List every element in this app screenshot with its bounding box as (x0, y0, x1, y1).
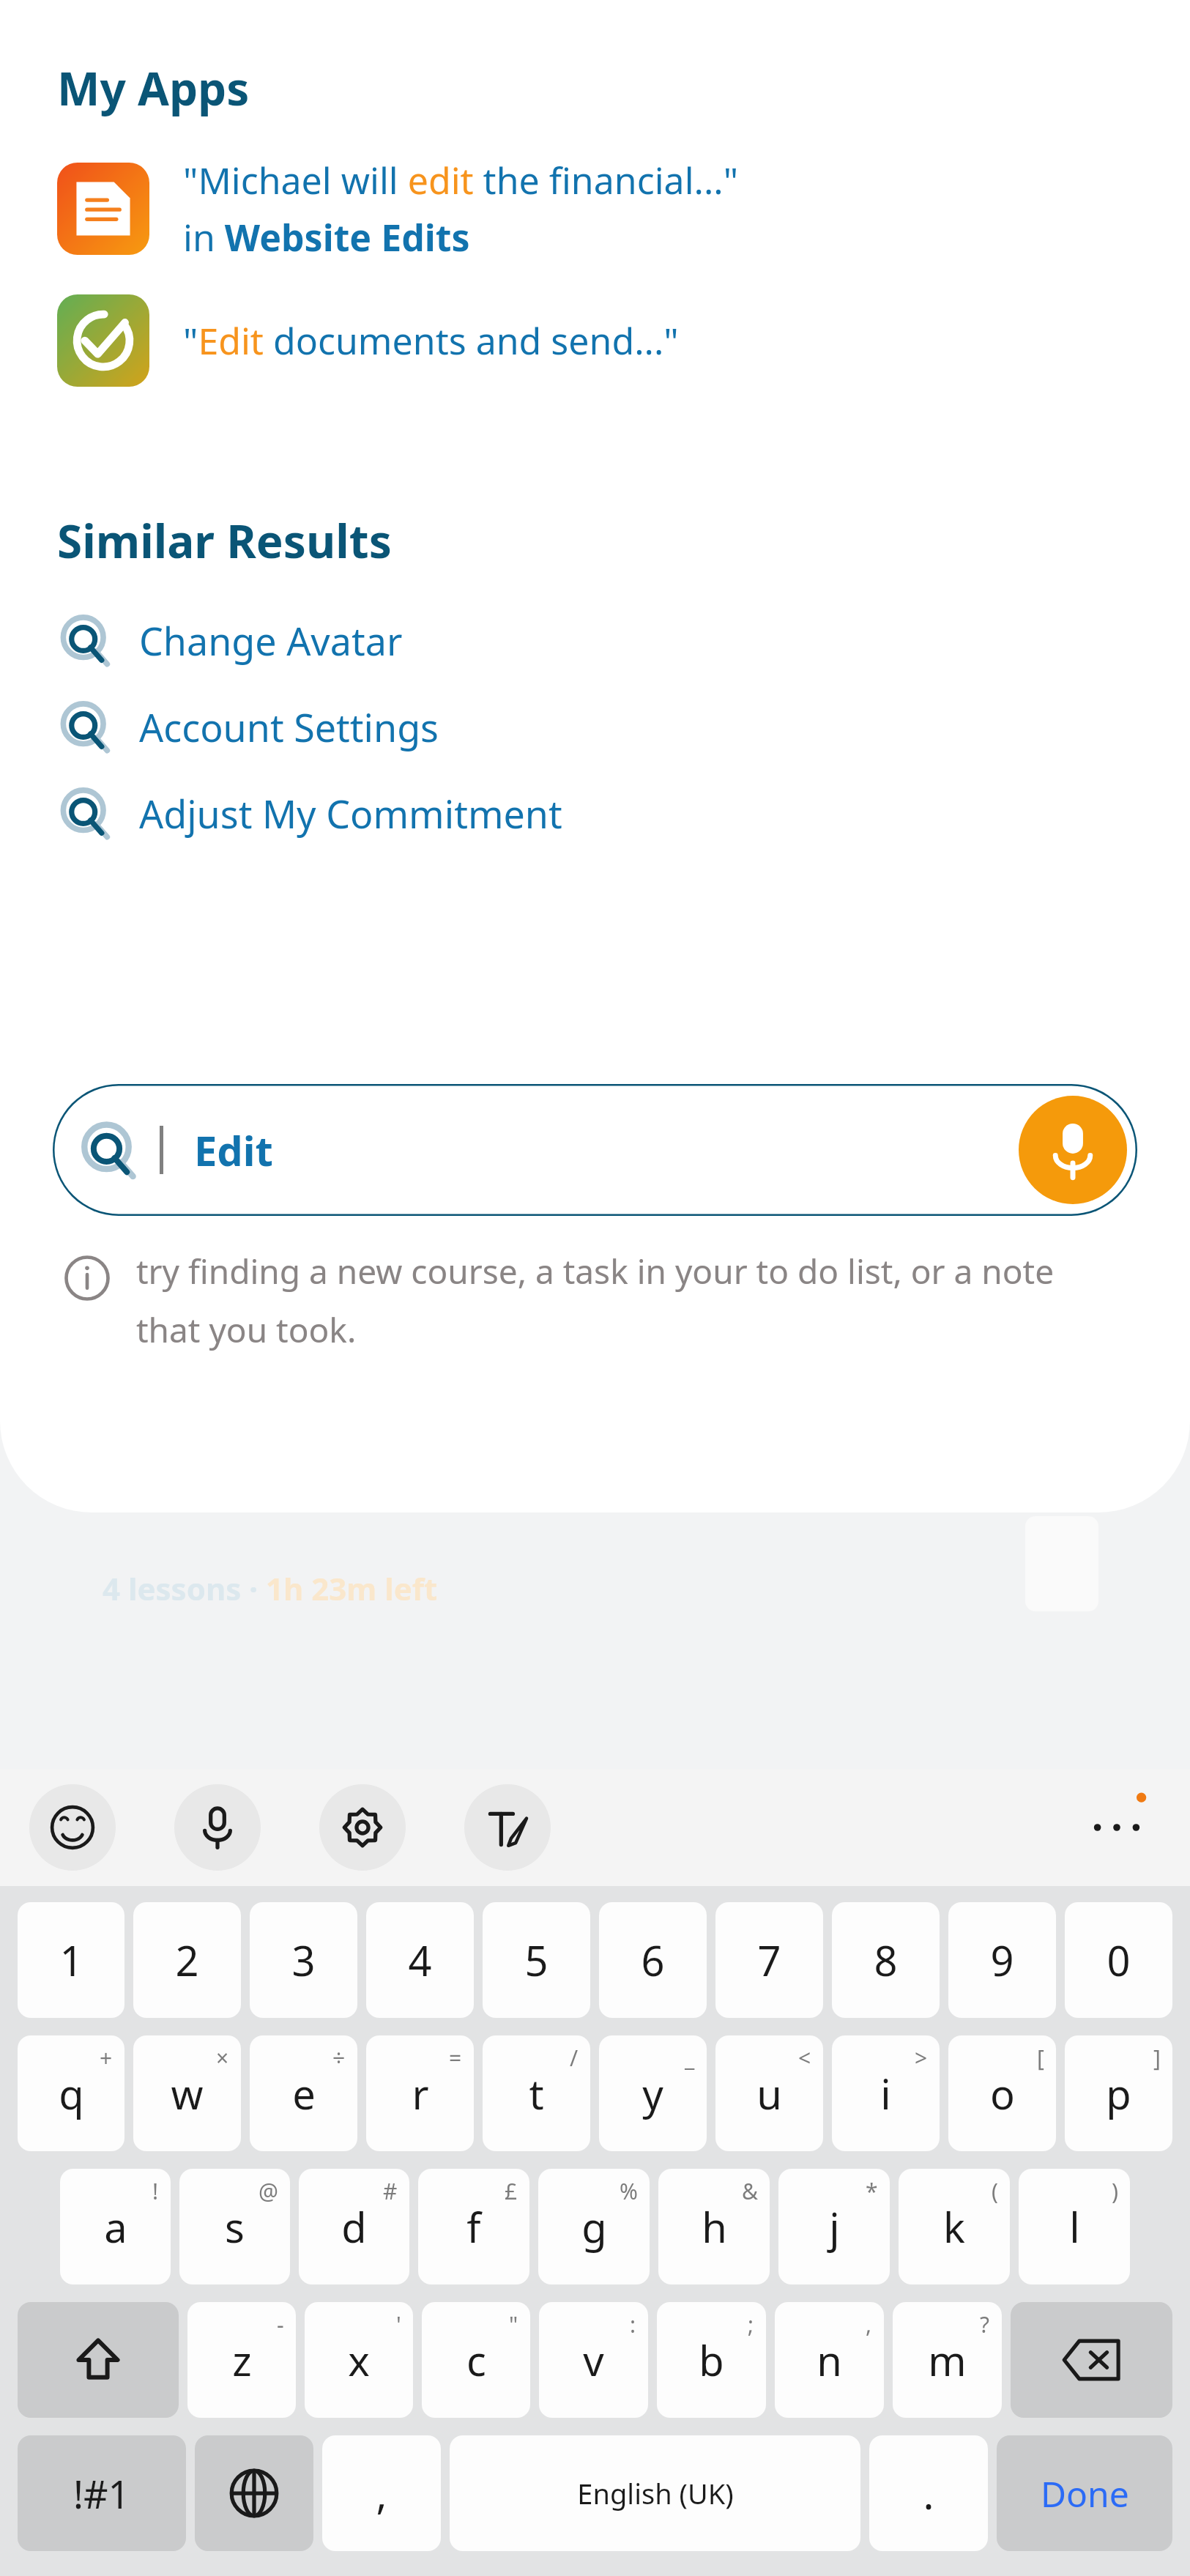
staticText: r (412, 2065, 429, 2121)
staticText: : (630, 2309, 636, 2339)
button[interactable]: Voice input (174, 1784, 261, 1871)
staticText: x (348, 2332, 370, 2388)
staticText: e (292, 2065, 316, 2121)
button[interactable]: "Michael will edit the financial..." (0, 149, 1190, 268)
button[interactable]: Symbols (18, 2435, 186, 2551)
button[interactable]: j (778, 2169, 890, 2284)
button[interactable]: 6 (599, 1902, 707, 2018)
button[interactable]: , (322, 2435, 441, 2551)
staticText: 2 (175, 1932, 199, 1988)
staticText: 9 (990, 1932, 1014, 1988)
button[interactable]: Change Avatar (0, 604, 1190, 677)
button[interactable]: Emoji (29, 1784, 116, 1871)
button[interactable]: Edit (53, 1084, 1137, 1216)
button[interactable]: 4 (366, 1902, 474, 2018)
button[interactable]: t (483, 2035, 590, 2151)
button[interactable]: Adjust My Commitment (0, 776, 1190, 850)
button[interactable]: z (187, 2302, 296, 2418)
button[interactable]: Handwriting (464, 1784, 551, 1871)
staticText: * (866, 2176, 878, 2206)
button[interactable]: o (948, 2035, 1056, 2151)
button[interactable]: v (539, 2302, 648, 2418)
staticText: 5 (524, 1932, 548, 1988)
staticText: ! (152, 2176, 159, 2206)
staticText: ÷ (332, 2043, 346, 2073)
staticText: & (742, 2176, 758, 2206)
staticText: My Apps (57, 57, 250, 119)
staticText: 7 (757, 1932, 781, 1988)
staticText: ) (1112, 2176, 1118, 2206)
button[interactable]: d (299, 2169, 409, 2284)
staticText: £ (505, 2176, 518, 2206)
button[interactable]: Account Settings (0, 690, 1190, 763)
button[interactable]: r (366, 2035, 474, 2151)
button[interactable]: More options (1073, 1783, 1161, 1871)
staticText: . (923, 2465, 934, 2521)
button[interactable]: "Edit documents and send..." (0, 289, 1190, 393)
button[interactable]: g (538, 2169, 650, 2284)
button[interactable]: 1 (18, 1902, 124, 2018)
button[interactable]: i (832, 2035, 940, 2151)
button[interactable]: Shift (18, 2302, 179, 2418)
staticText: @ (259, 2176, 278, 2206)
button[interactable]: English (UK) (450, 2435, 860, 2551)
staticText: v (583, 2332, 604, 2388)
button[interactable]: 2 (133, 1902, 241, 2018)
button[interactable]: h (658, 2169, 770, 2284)
staticText: k (943, 2199, 965, 2254)
button[interactable]: s (179, 2169, 290, 2284)
button[interactable]: 7 (715, 1902, 823, 2018)
button[interactable]: Change language (195, 2435, 313, 2551)
button[interactable]: n (775, 2302, 884, 2418)
staticText: = (449, 2043, 462, 2073)
button[interactable]: l (1019, 2169, 1130, 2284)
staticText: o (990, 2065, 1015, 2121)
button[interactable]: u (715, 2035, 823, 2151)
button[interactable]: 8 (832, 1902, 940, 2018)
button[interactable]: Backspace (1011, 2302, 1172, 2418)
staticText: 1 (59, 1932, 83, 1988)
button[interactable]: 0 (1065, 1902, 1172, 2018)
staticText: l (1069, 2199, 1080, 2254)
staticText: Adjust My Commitment (139, 787, 562, 839)
button[interactable]: k (899, 2169, 1010, 2284)
button[interactable]: a (60, 2169, 171, 2284)
button[interactable]: 9 (948, 1902, 1056, 2018)
staticText: y (642, 2065, 663, 2121)
button[interactable]: f (418, 2169, 529, 2284)
button[interactable]: w (133, 2035, 241, 2151)
button[interactable]: Done (997, 2435, 1172, 2551)
staticText: w (171, 2065, 204, 2121)
button[interactable]: 3 (250, 1902, 357, 2018)
button[interactable]: y (599, 2035, 707, 2151)
staticText: Similar Results (57, 510, 392, 571)
button[interactable]: . (869, 2435, 988, 2551)
button[interactable]: p (1065, 2035, 1172, 2151)
staticText: English (UK) (577, 2474, 734, 2512)
button[interactable]: c (422, 2302, 530, 2418)
staticText: g (581, 2199, 607, 2254)
button[interactable]: b (657, 2302, 766, 2418)
staticText: / (570, 2043, 579, 2073)
staticText: "Michael will edit the financial..." (183, 155, 739, 205)
staticText: × (216, 2043, 229, 2073)
staticText: Account Settings (139, 701, 439, 753)
staticText: try finding a new course, a task in your… (136, 1248, 1102, 1352)
staticText: d (341, 2199, 367, 2254)
staticText: ( (992, 2176, 998, 2206)
staticText: f (466, 2199, 481, 2254)
staticText: in Website Edits (183, 212, 470, 262)
button[interactable]: Keyboard settings (319, 1784, 406, 1871)
staticText: m (928, 2332, 967, 2388)
staticText: t (529, 2065, 544, 2121)
button[interactable]: e (250, 2035, 357, 2151)
button[interactable]: 5 (483, 1902, 590, 2018)
staticText: s (225, 2199, 245, 2254)
staticText: _ (685, 2043, 695, 2073)
button[interactable]: Voice search (1019, 1096, 1127, 1204)
button[interactable]: x (305, 2302, 413, 2418)
button[interactable]: m (893, 2302, 1002, 2418)
button[interactable]: q (18, 2035, 124, 2151)
staticText: 8 (874, 1932, 898, 1988)
staticText: h (702, 2199, 727, 2254)
